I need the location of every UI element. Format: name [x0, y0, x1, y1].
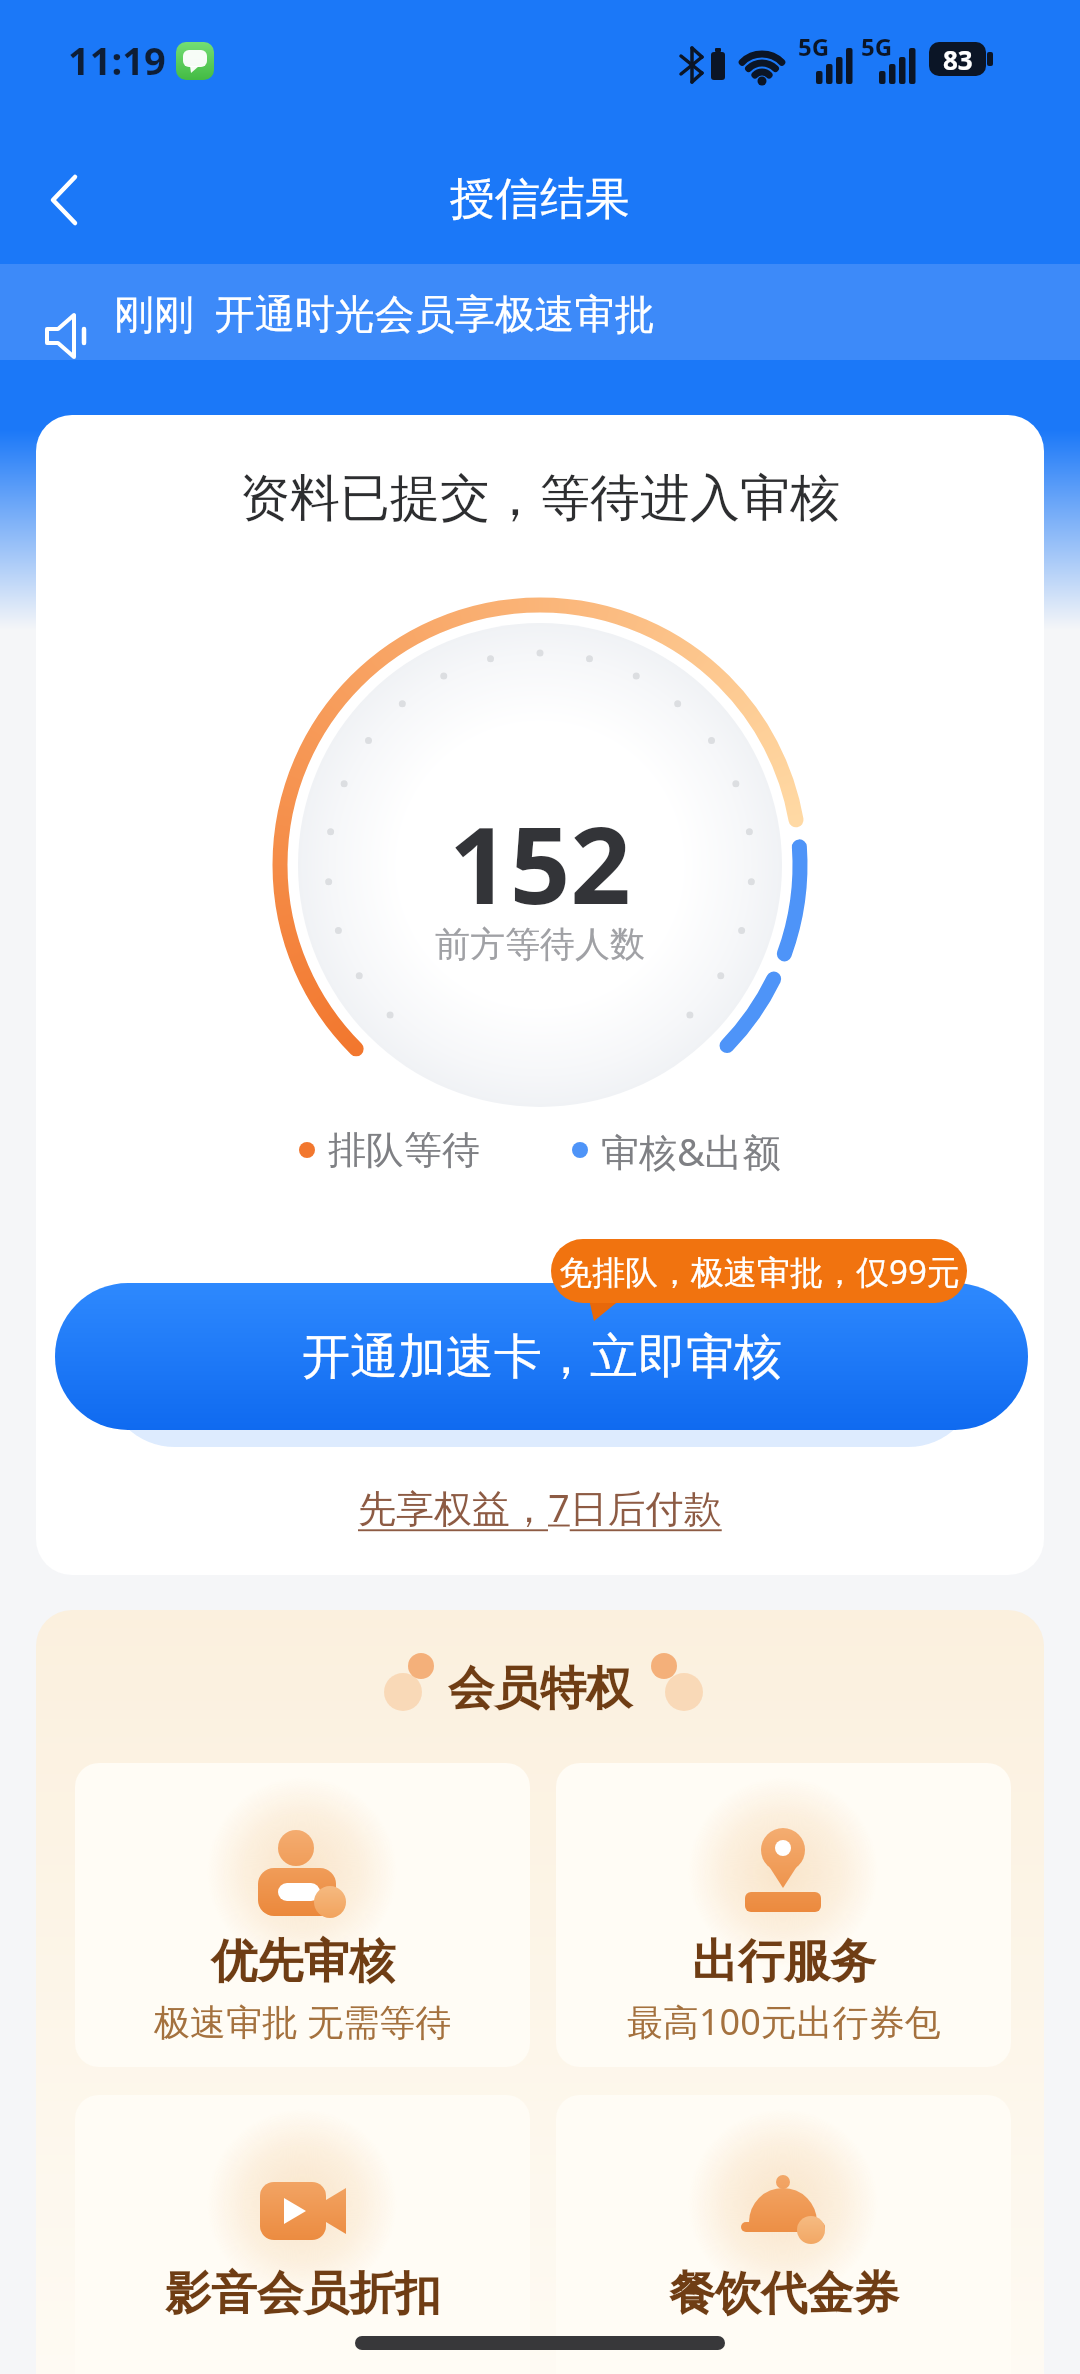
staticText: 前方等待人数: [435, 922, 645, 966]
staticText: 152: [449, 791, 631, 935]
staticText: 餐饮代金券: [669, 2265, 899, 2323]
staticText: 刚刚 开通时光会员享极速审批: [114, 285, 655, 340]
button[interactable]: 出行服务: [556, 1763, 1011, 2067]
staticText: 5G: [861, 30, 893, 63]
staticText: 优先审核: [211, 1933, 395, 1991]
button[interactable]: 开通加速卡，立即审核: [55, 1283, 1028, 1430]
staticText: 会员特权: [448, 1660, 632, 1718]
button[interactable]: [20, 152, 108, 248]
staticText: 开通加速卡，立即审核: [302, 1327, 782, 1387]
staticText: 授信结果: [450, 171, 630, 228]
staticText: 排队等待: [328, 1126, 480, 1174]
staticText: 免排队，极速审批，仅99元: [559, 1249, 960, 1294]
button[interactable]: 刚刚 开通时光会员享极速审批: [0, 264, 1080, 360]
staticText: 83: [943, 42, 973, 76]
staticText: 11:19: [68, 34, 166, 86]
button[interactable]: 优先审核: [75, 1763, 530, 2067]
button[interactable]: 先享权益，7日后付款: [358, 1481, 722, 1533]
staticText: 出行服务: [692, 1933, 876, 1991]
staticText: 极速审批 无需等待: [154, 1997, 452, 2046]
button[interactable]: 影音会员折扣: [75, 2095, 530, 2374]
staticText: 资料已提交，等待进入审核: [240, 467, 840, 530]
staticText: 影音会员折扣: [165, 2265, 441, 2323]
button[interactable]: 餐饮代金券: [556, 2095, 1011, 2374]
staticText: 最高100元出行券包: [627, 1997, 941, 2046]
staticText: 审核&出额: [601, 1125, 781, 1175]
staticText: 5G: [798, 30, 830, 63]
